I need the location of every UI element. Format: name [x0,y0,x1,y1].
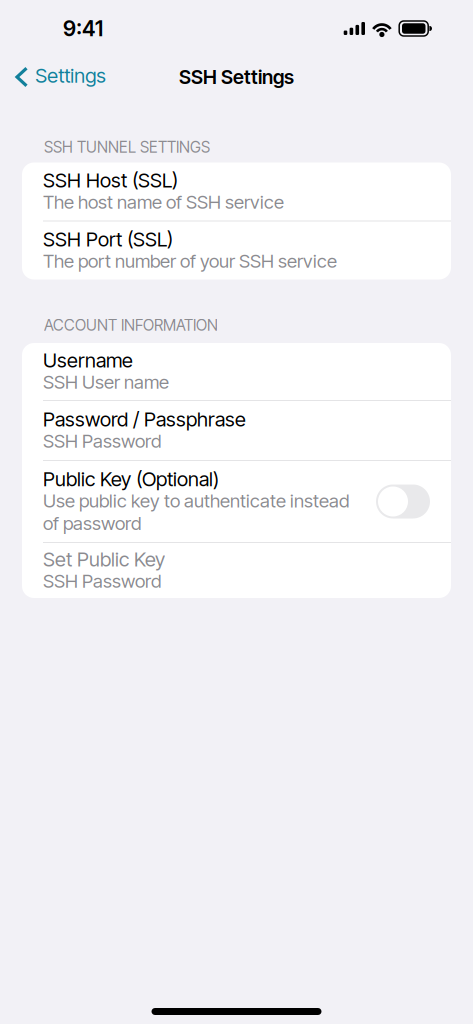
button[interactable]: SSH Port (SSL) [22,221,451,279]
staticText: Username [43,348,133,372]
staticText: SSH Host (SSL) [43,168,178,192]
staticText: SSH Settings [179,65,294,89]
button[interactable]: Settings [0,54,118,100]
staticText: 9:41 [63,16,103,41]
staticText: SSH Password [43,430,161,452]
staticText: The host name of SSH service [43,191,284,213]
button[interactable]: Set Public Key [22,543,451,598]
staticText: The port number of your SSH service [43,250,337,272]
button[interactable]: Username [22,343,451,400]
staticText: Settings [35,63,106,88]
staticText: Use public key to authenticate instead o… [43,489,349,535]
staticText: SSH TUNNEL SETTINGS [44,138,210,156]
staticText: Set Public Key [43,547,165,571]
button[interactable]: SSH Host (SSL) [22,162,451,220]
staticText: SSH Port (SSL) [43,227,173,251]
staticText: Public Key (Optional) [43,467,219,491]
staticText: Password / Passphrase [43,407,246,431]
staticText: ACCOUNT INFORMATION [44,316,218,334]
button[interactable]: Use public key to authenticate [376,484,430,518]
button[interactable]: Password / Passphrase [22,401,451,460]
staticText: SSH User name [43,371,169,393]
staticText: SSH Password [43,570,161,592]
